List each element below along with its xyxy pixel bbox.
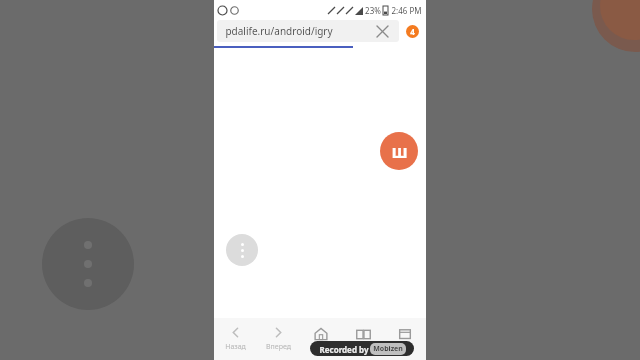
button[interactable]: Home bbox=[300, 318, 342, 360]
button[interactable]: Stop loading bbox=[373, 22, 391, 40]
staticText: Mobizen bbox=[373, 344, 403, 354]
button[interactable]: More options bbox=[226, 234, 258, 266]
button[interactable]: Tabs bbox=[401, 20, 423, 42]
staticText: 23% bbox=[365, 5, 381, 16]
staticText: Назад bbox=[225, 342, 246, 352]
staticText: ш bbox=[391, 140, 408, 163]
button[interactable]: Tabs bbox=[384, 318, 426, 360]
button[interactable]: pdalife.ru/android/igry bbox=[217, 20, 399, 42]
staticText: Recorded by bbox=[318, 344, 370, 355]
staticText: 2:46 PM bbox=[391, 5, 422, 16]
staticText: Вперед bbox=[266, 342, 291, 352]
button[interactable]: Назад bbox=[214, 318, 257, 360]
button[interactable]: Вперед bbox=[257, 318, 300, 360]
staticText: 4 bbox=[410, 26, 415, 37]
staticText: pdalife.ru/android/igry bbox=[225, 24, 333, 38]
button[interactable]: Bookmarks bbox=[342, 318, 384, 360]
